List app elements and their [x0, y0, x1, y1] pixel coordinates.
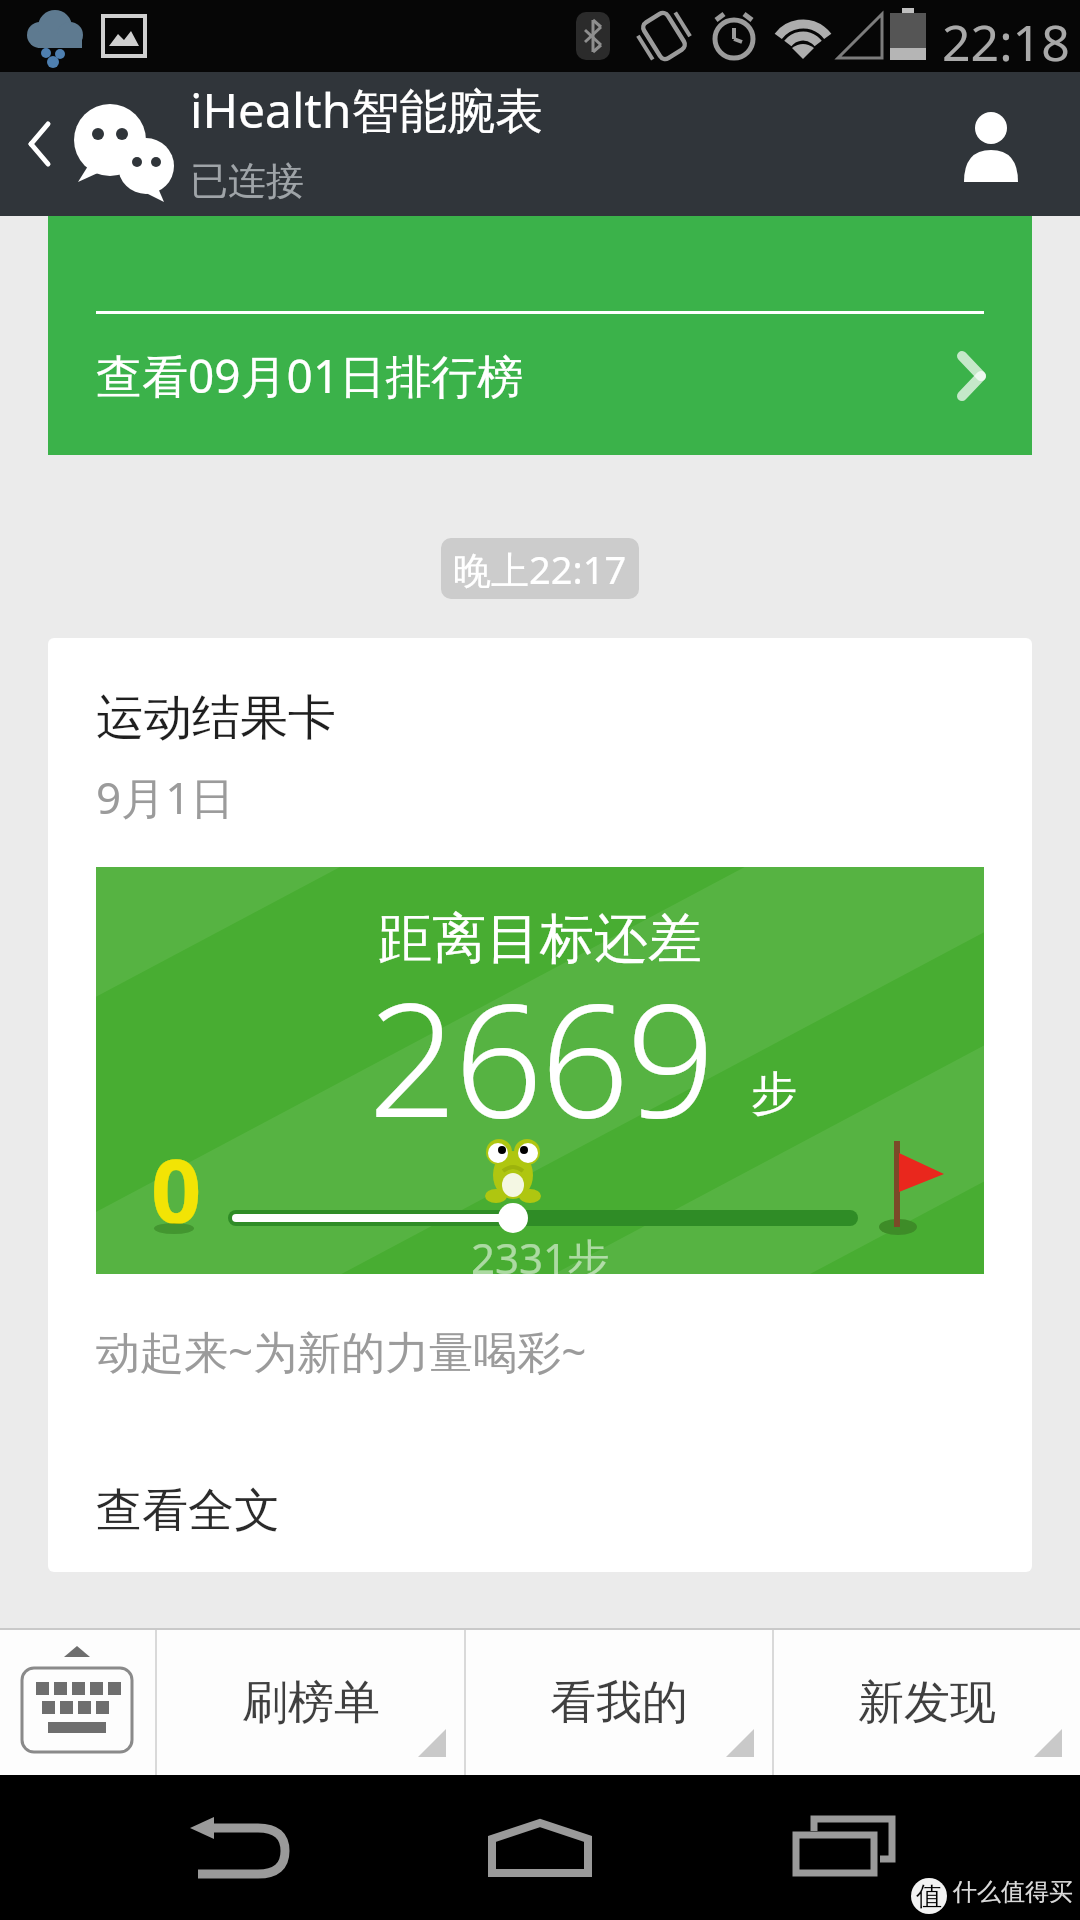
- staticText: 已连接: [190, 157, 304, 205]
- staticText: 距离目标还差: [378, 905, 702, 973]
- staticText: 步: [751, 1065, 797, 1123]
- button[interactable]: 刷榜单: [157, 1630, 464, 1775]
- staticText: 值: [916, 1880, 942, 1913]
- button[interactable]: [460, 1775, 620, 1920]
- button[interactable]: [160, 1775, 320, 1920]
- staticText: 新发现: [858, 1674, 996, 1732]
- button[interactable]: [0, 72, 60, 216]
- button[interactable]: [0, 1630, 155, 1775]
- staticText: 看我的: [550, 1674, 688, 1732]
- staticText: 查看全文: [96, 1482, 280, 1540]
- button[interactable]: [760, 1775, 920, 1920]
- staticText: 刷榜单: [242, 1674, 380, 1732]
- staticText: 22:18: [942, 8, 1070, 76]
- staticText: 0: [151, 1129, 202, 1249]
- staticText: 2331步: [471, 1229, 610, 1274]
- staticText: 2669: [368, 950, 713, 1162]
- staticText: 晚上22:17: [453, 543, 627, 595]
- button[interactable]: [940, 72, 1040, 216]
- staticText: 什么值得买: [953, 1877, 1073, 1907]
- button[interactable]: 查看全文: [48, 1482, 1032, 1572]
- button[interactable]: 新发现: [774, 1630, 1080, 1775]
- staticText: 运动结果卡: [96, 688, 336, 748]
- button[interactable]: 查看09月01日排行榜: [48, 216, 1032, 455]
- staticText: 动起来~为新的力量喝彩~: [96, 1321, 587, 1381]
- staticText: 查看09月01日排行榜: [96, 344, 524, 407]
- button[interactable]: 看我的: [466, 1630, 772, 1775]
- staticText: 9月1日: [96, 767, 235, 827]
- staticText: iHealth智能腕表: [190, 77, 544, 143]
